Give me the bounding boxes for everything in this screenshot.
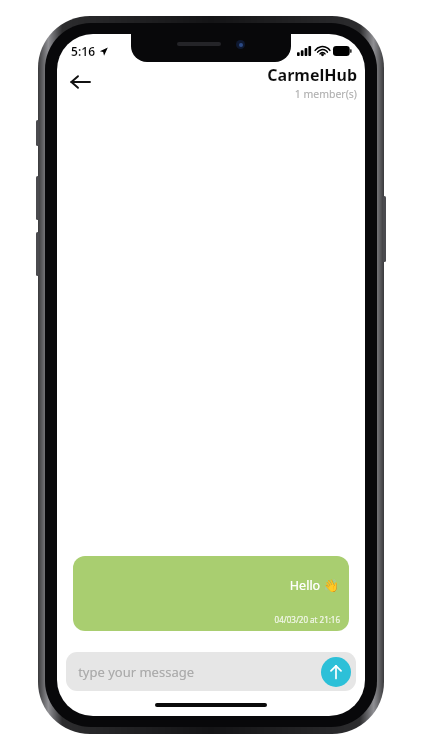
- button[interactable]: Hello 👋: [73, 556, 349, 631]
- button[interactable]: type your message: [66, 652, 356, 691]
- staticText: Hello 👋: [289, 577, 339, 594]
- staticText: type your message: [78, 663, 194, 681]
- staticText: CarmelHub: [267, 64, 357, 86]
- button[interactable]: Back: [61, 63, 99, 101]
- button[interactable]: CarmelHub: [267, 64, 357, 101]
- staticText: 04/03/20 at 21:16: [274, 614, 340, 625]
- staticText: 1 member(s): [294, 87, 357, 101]
- staticText: 5:16: [71, 43, 95, 59]
- button[interactable]: Send: [321, 657, 351, 687]
